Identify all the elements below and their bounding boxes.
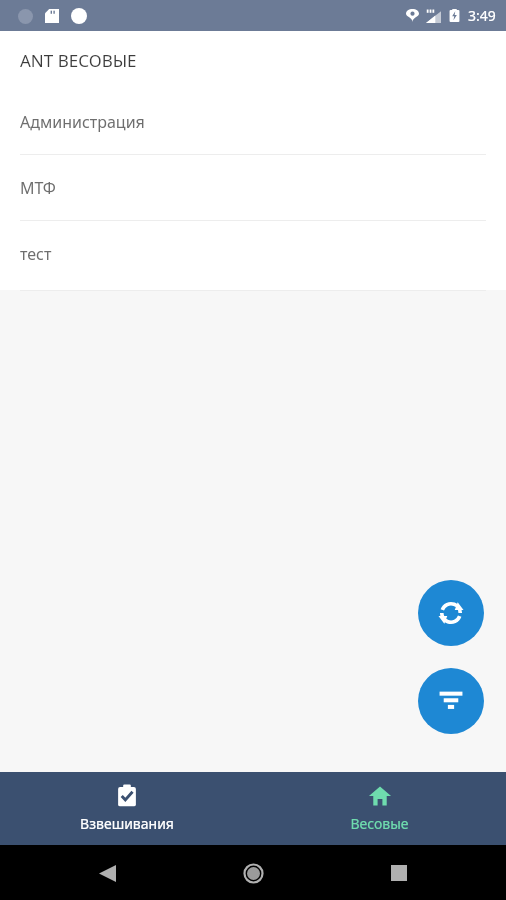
staticText: МТФ: [20, 177, 56, 199]
staticText: Администрация: [20, 111, 145, 133]
staticText: Весовые: [350, 814, 409, 833]
staticText: тест: [20, 243, 52, 265]
staticText: Взвешивания: [80, 814, 174, 833]
button[interactable]: Синхронизировать: [418, 580, 484, 646]
button[interactable]: Назад: [90, 856, 124, 890]
button[interactable]: Фильтр: [418, 668, 484, 734]
staticText: 3:49: [468, 6, 496, 25]
button[interactable]: МТФ: [0, 155, 506, 220]
button[interactable]: Последние: [382, 856, 416, 890]
button[interactable]: Взвешивания: [0, 772, 253, 845]
staticText: ANT ВЕСОВЫЕ: [20, 49, 137, 72]
button[interactable]: Администрация: [0, 89, 506, 154]
button[interactable]: Домой: [236, 856, 270, 890]
button[interactable]: тест: [0, 221, 506, 286]
button[interactable]: Весовые: [253, 772, 506, 845]
